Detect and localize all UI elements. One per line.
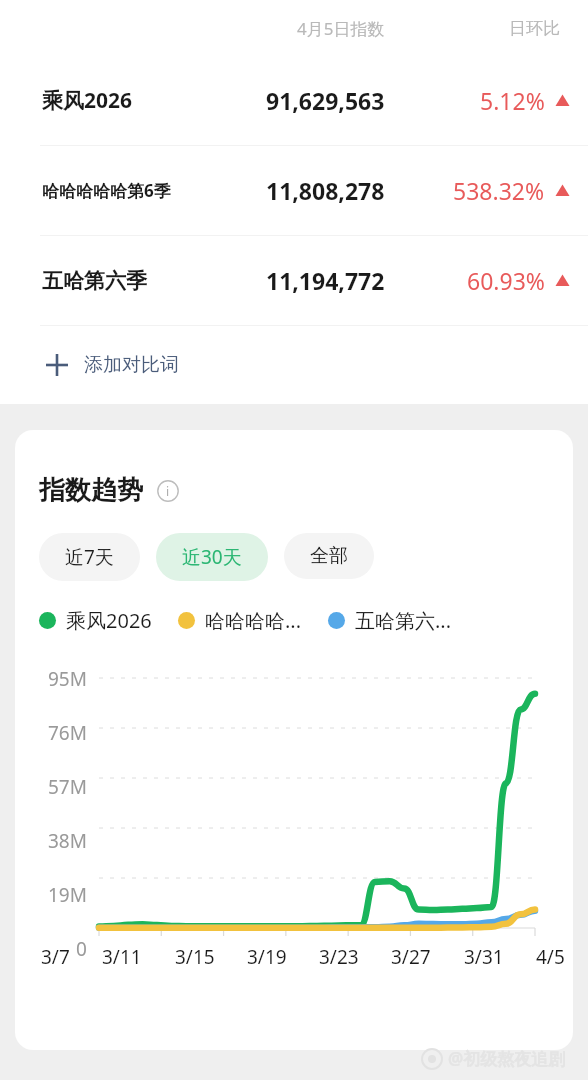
staticText: 乘风2026 — [66, 607, 152, 634]
staticText: 3/27 — [391, 944, 431, 970]
button[interactable]: 说明 — [157, 480, 179, 502]
staticText: 日环比 — [509, 18, 560, 39]
staticText: i — [166, 483, 170, 499]
staticText: 添加对比词 — [84, 353, 179, 377]
staticText: 91,629,563 — [266, 85, 385, 116]
button[interactable]: 添加对比词 — [0, 326, 588, 404]
staticText: 哈哈哈哈哈第6季 — [42, 179, 171, 202]
staticText: 538.32% — [453, 175, 545, 206]
staticText: 76M — [48, 720, 87, 746]
button[interactable]: 哈哈哈哈哈第6季 — [0, 146, 588, 235]
staticText: @初级熬夜追剧 — [448, 1047, 566, 1070]
staticText: 0 — [76, 936, 87, 962]
staticText: 4月5日指数 — [297, 17, 385, 40]
staticText: 乘风2026 — [42, 86, 133, 115]
staticText: 3/7 — [41, 944, 70, 970]
staticText: 11,808,278 — [266, 175, 385, 206]
staticText: 57M — [48, 774, 87, 800]
staticText: 3/19 — [247, 944, 287, 970]
staticText: 60.93% — [467, 265, 545, 296]
staticText: 3/31 — [464, 944, 504, 970]
staticText: 五哈第六季 — [42, 268, 147, 294]
staticText: 95M — [48, 666, 87, 692]
staticText: 全部 — [310, 544, 348, 568]
button[interactable]: 乘风2026 — [0, 56, 588, 145]
staticText: 19M — [48, 882, 87, 908]
button[interactable]: 近7天 — [39, 533, 140, 581]
staticText: 指数趋势 — [39, 474, 143, 507]
button[interactable]: 五哈第六... — [328, 607, 452, 634]
button[interactable]: 哈哈哈哈... — [178, 607, 302, 634]
staticText: 近7天 — [65, 544, 114, 570]
button[interactable]: 全部 — [284, 533, 374, 579]
staticText: 38M — [48, 828, 87, 854]
staticText: 11,194,772 — [266, 265, 385, 296]
staticText: 3/23 — [319, 944, 359, 970]
staticText: 5.12% — [480, 85, 545, 116]
staticText: 哈哈哈哈... — [205, 607, 302, 634]
staticText: 4/5 — [536, 944, 565, 970]
staticText: 3/11 — [102, 944, 142, 970]
staticText: 近30天 — [182, 544, 242, 570]
staticText: 五哈第六... — [355, 607, 452, 634]
button[interactable]: 乘风2026 — [39, 607, 152, 634]
button[interactable]: 五哈第六季 — [0, 236, 588, 325]
staticText: 3/15 — [175, 944, 215, 970]
button[interactable]: 近30天 — [156, 533, 268, 581]
